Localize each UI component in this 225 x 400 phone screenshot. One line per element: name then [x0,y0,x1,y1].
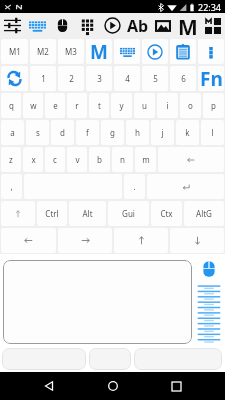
button[interactable]: M1 [1,39,28,64]
staticText: y [119,100,124,111]
button[interactable]: Ctx [151,201,182,226]
button[interactable]: Settings [0,13,25,38]
button[interactable]: Recents [161,372,191,400]
button[interactable]: Ab [125,13,150,38]
button[interactable]: x [23,147,43,172]
button[interactable]: Home [98,372,128,400]
button[interactable]: Media [142,39,168,64]
button[interactable]: Back [34,372,64,400]
button[interactable]: M [175,13,200,38]
button[interactable]: Left click [2,348,86,370]
button[interactable]: Media [100,13,125,38]
button[interactable]: M3 [58,39,84,64]
button[interactable]: p [203,93,224,118]
button[interactable]: Numpad [75,13,100,38]
button[interactable]: Scroll [197,285,221,344]
button[interactable]: Alt [69,201,106,226]
button[interactable]: Clipboard [170,39,196,64]
button[interactable]: Refresh [1,66,28,91]
staticText: b [97,154,102,165]
button[interactable]: Left [1,228,56,253]
staticText: 22:34 [198,1,222,13]
button[interactable]: o [180,93,201,118]
button[interactable]: 4 [114,66,140,91]
button[interactable]: q [1,93,21,118]
staticText: w [30,100,37,111]
button[interactable]: Gui [108,201,149,226]
button[interactable]: 2 [58,66,84,91]
button[interactable]: m [135,147,156,172]
staticText: 6 [181,73,186,84]
button[interactable]: e [45,93,65,118]
staticText: m [142,154,150,165]
button[interactable]: h [126,120,149,145]
staticText: d [60,127,65,138]
button[interactable]: Mouse [50,13,75,38]
staticText: Alt [82,208,93,219]
button[interactable]: Macros [200,13,225,38]
button[interactable]: , [1,174,22,199]
button[interactable]: Shift [1,201,35,226]
staticText: n [120,154,125,165]
button[interactable]: . [124,174,145,199]
button[interactable]: a [1,120,24,145]
button[interactable]: c [45,147,65,172]
button[interactable]: r [67,93,87,118]
button[interactable]: M2 [30,39,56,64]
staticText: M3 [65,46,77,57]
button[interactable]: d [51,120,74,145]
button[interactable]: M [86,39,112,64]
button[interactable]: 5 [142,66,168,91]
button[interactable]: i [157,93,178,118]
button[interactable]: t [89,93,109,118]
button[interactable]: 1 [30,66,56,91]
button[interactable]: 3 [86,66,112,91]
staticText: e [53,100,58,111]
button[interactable]: y [111,93,132,118]
staticText: q [9,100,14,111]
button[interactable]: b [89,147,110,172]
button[interactable]: Mouse mode [199,259,219,279]
staticText: M [178,13,198,38]
button[interactable]: l [201,120,224,145]
button[interactable]: Right [58,228,112,253]
button[interactable]: Trackpad [3,260,192,344]
staticText: Ab [127,15,149,37]
staticText: o [188,100,193,111]
button[interactable]: Down [170,228,224,253]
button[interactable]: AltG [184,201,224,226]
button[interactable]: 6 [170,66,196,91]
button[interactable]: f [76,120,99,145]
staticText: . [133,181,136,192]
button[interactable]: Right click [134,348,222,370]
staticText: j [161,127,164,138]
button[interactable]: k [176,120,199,145]
button[interactable]: w [23,93,43,118]
staticText: Ctrl [45,208,59,219]
button[interactable]: Image [150,13,175,38]
staticText: M2 [37,46,49,57]
button[interactable]: Up [114,228,168,253]
button[interactable]: Ctrl [37,201,67,226]
button[interactable]: Backspace [158,147,224,172]
staticText: f [86,127,89,138]
button[interactable]: s [26,120,49,145]
staticText: 4 [125,73,130,84]
button[interactable]: More options [198,39,224,64]
button[interactable]: Middle click [89,348,131,370]
button[interactable]: g [101,120,124,145]
button[interactable]: u [134,93,155,118]
staticText: Gui [122,208,135,219]
button[interactable]: v [67,147,87,172]
button[interactable]: j [151,120,174,145]
button[interactable]: n [112,147,133,172]
staticText: Ctx [160,208,173,219]
button[interactable]: Keyboard [25,13,50,38]
button[interactable]: Enter [147,174,224,199]
button[interactable]: Fn [198,66,224,91]
button[interactable]: Keyboard [114,39,140,64]
staticText: , [10,181,13,192]
button[interactable]: z [1,147,21,172]
staticText: 2 [69,73,74,84]
